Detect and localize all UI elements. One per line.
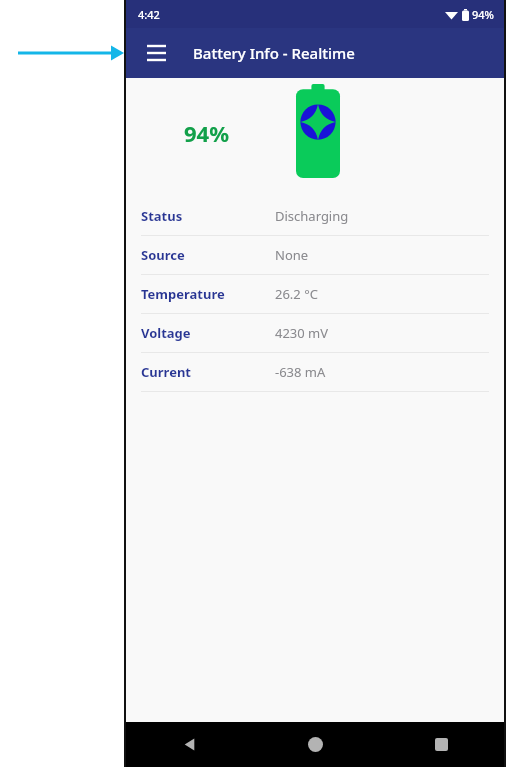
staticText: -638 mA — [275, 363, 326, 381]
staticText: Current — [141, 363, 192, 381]
button[interactable]: Source — [126, 236, 504, 275]
button[interactable]: Open navigation menu — [136, 33, 176, 73]
staticText: 94% — [472, 7, 494, 22]
button[interactable]: Back — [126, 722, 252, 767]
staticText: Discharging — [275, 207, 349, 225]
staticText: 4230 mV — [275, 324, 329, 342]
staticText: Voltage — [141, 324, 191, 342]
button[interactable]: Voltage — [126, 314, 504, 353]
staticText: 94% — [184, 118, 230, 148]
button[interactable]: Current — [126, 353, 504, 392]
button[interactable]: Recent apps — [378, 722, 504, 767]
staticText: 26.2 °C — [275, 285, 318, 303]
staticText: Temperature — [141, 285, 225, 303]
staticText: None — [275, 246, 309, 264]
button[interactable]: Status — [126, 197, 504, 236]
staticText: Source — [141, 246, 185, 264]
staticText: 4:42 — [138, 7, 160, 22]
button[interactable]: Home — [252, 722, 378, 767]
staticText: Status — [141, 207, 183, 225]
button[interactable]: Temperature — [126, 275, 504, 314]
staticText: Battery Info - Realtime — [193, 43, 355, 63]
